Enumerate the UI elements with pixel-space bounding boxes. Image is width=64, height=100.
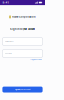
staticText: 9:41: [3, 1, 9, 4]
staticText: Password: [5, 53, 12, 54]
staticText: Email address: [5, 41, 14, 42]
staticText: Acme Corporation: [12, 15, 36, 18]
button[interactable]: Sign in to your account: [2, 87, 43, 92]
staticText: Sign in to your account: [15, 89, 30, 90]
staticText: Sign in to your account: [10, 28, 35, 31]
button[interactable]: Forgot password?: [30, 59, 42, 60]
staticText: Forgot password?: [30, 59, 42, 60]
button[interactable]: Email address: [2, 38, 43, 45]
button[interactable]: Password: [2, 50, 43, 57]
